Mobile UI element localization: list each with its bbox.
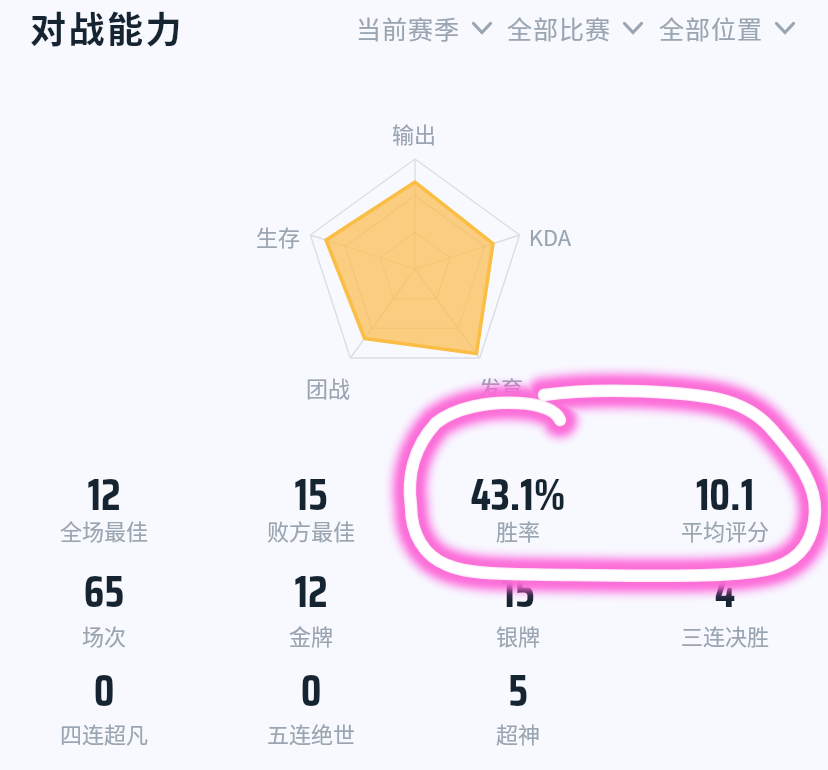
staticText: KDA <box>420 220 680 252</box>
staticText: 对战能力 <box>30 1 185 53</box>
button[interactable]: 0 <box>211 642 411 730</box>
staticText: 平均评分 <box>625 514 825 546</box>
button[interactable]: 4 <box>625 543 825 631</box>
staticText: 12 <box>211 558 411 626</box>
staticText: 12 <box>4 461 204 529</box>
button[interactable]: 43.1% <box>418 446 618 534</box>
button[interactable]: 对战能力 <box>19 0 195 56</box>
staticText: 全部位置 <box>659 10 764 46</box>
staticText: 15 <box>211 461 411 529</box>
staticText: 败方最佳 <box>211 514 411 546</box>
staticText: 生存 <box>148 220 408 252</box>
staticText: 10.1 <box>625 461 825 529</box>
staticText: 金牌 <box>211 619 411 651</box>
staticText: 四连超凡 <box>4 717 204 749</box>
button[interactable]: 12 <box>211 543 411 631</box>
staticText: 场次 <box>4 619 204 651</box>
staticText: 全部比赛 <box>507 10 612 46</box>
staticText: 超神 <box>418 717 618 749</box>
button[interactable]: 全部位置 <box>653 2 801 54</box>
staticText: 五连绝世 <box>211 717 411 749</box>
staticText: 5 <box>418 657 618 725</box>
button[interactable]: 全部比赛 <box>501 2 649 54</box>
button[interactable]: 5 <box>418 642 618 730</box>
staticText: 全场最佳 <box>4 514 204 546</box>
staticText: 65 <box>4 558 204 626</box>
button[interactable]: 10.1 <box>625 446 825 534</box>
button[interactable]: 0 <box>4 642 204 730</box>
staticText: 43.1% <box>418 461 618 529</box>
staticText: 当前赛季 <box>356 10 461 46</box>
staticText: 15 <box>418 558 618 626</box>
staticText: 0 <box>211 657 411 725</box>
other: Hand-drawn highlight circling win rate a… <box>380 370 828 600</box>
staticText: 银牌 <box>418 619 618 651</box>
staticText: 团战 <box>198 371 458 403</box>
staticText: 4 <box>625 558 825 626</box>
staticText: 0 <box>4 657 204 725</box>
button[interactable]: 65 <box>4 543 204 631</box>
button[interactable]: 当前赛季 <box>350 2 498 54</box>
staticText: 输出 <box>284 117 544 149</box>
staticText: 胜率 <box>418 514 618 546</box>
button[interactable]: 15 <box>418 543 618 631</box>
staticText: 发育 <box>371 371 631 403</box>
staticText: 三连决胜 <box>625 619 825 651</box>
button[interactable]: 12 <box>4 446 204 534</box>
button[interactable]: 15 <box>211 446 411 534</box>
